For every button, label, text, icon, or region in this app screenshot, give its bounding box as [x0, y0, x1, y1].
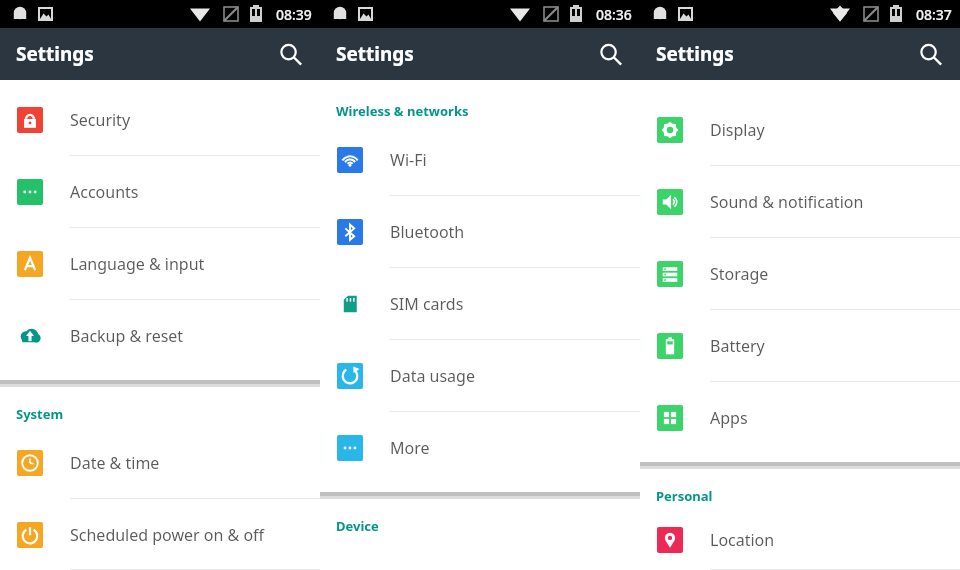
staticText: More: [390, 437, 430, 459]
staticText: Language & input: [70, 253, 205, 275]
staticText: Wireless & networks: [336, 102, 469, 120]
staticText: Personal: [656, 487, 713, 505]
staticText: Wi-Fi: [390, 149, 427, 171]
staticText: Backup & reset: [70, 325, 184, 347]
staticText: Display: [710, 119, 765, 141]
button[interactable]: Data usage: [320, 340, 640, 412]
staticText: Location: [710, 529, 775, 551]
staticText: Security: [70, 109, 131, 131]
button[interactable]: Language & input: [0, 228, 320, 300]
staticText: Settings: [656, 41, 734, 67]
staticText: 08:37: [916, 5, 952, 24]
button[interactable]: Security: [0, 84, 320, 156]
button[interactable]: Battery: [640, 310, 960, 382]
staticText: 08:39: [276, 5, 312, 24]
button[interactable]: Location: [640, 509, 960, 570]
staticText: Storage: [710, 263, 769, 285]
button[interactable]: Display: [640, 94, 960, 166]
staticText: Settings: [336, 41, 414, 67]
button[interactable]: More: [320, 412, 640, 484]
staticText: Battery: [710, 335, 765, 357]
staticText: Sound & notification: [710, 191, 864, 213]
staticText: 08:36: [596, 5, 632, 24]
button[interactable]: Apps: [640, 382, 960, 454]
button[interactable]: Backup & reset: [0, 300, 320, 372]
staticText: Scheduled power on & off: [70, 524, 265, 546]
button[interactable]: Storage: [640, 238, 960, 310]
staticText: Data usage: [390, 365, 475, 387]
staticText: System: [16, 405, 64, 423]
staticText: Apps: [710, 407, 748, 429]
button[interactable]: Search: [268, 32, 312, 76]
staticText: Accounts: [70, 181, 139, 203]
button[interactable]: Date & time: [0, 427, 320, 499]
button[interactable]: Bluetooth: [320, 196, 640, 268]
button[interactable]: Search: [908, 32, 952, 76]
staticText: Bluetooth: [390, 221, 465, 243]
button[interactable]: Wi-Fi: [320, 124, 640, 196]
staticText: Date & time: [70, 452, 160, 474]
staticText: Device: [336, 517, 379, 535]
button[interactable]: Accounts: [0, 156, 320, 228]
button[interactable]: Scheduled power on & off: [0, 499, 320, 570]
button[interactable]: SIM cards: [320, 268, 640, 340]
button[interactable]: Sound & notification: [640, 166, 960, 238]
staticText: Settings: [16, 41, 94, 67]
button[interactable]: Search: [588, 32, 632, 76]
staticText: SIM cards: [390, 293, 464, 315]
